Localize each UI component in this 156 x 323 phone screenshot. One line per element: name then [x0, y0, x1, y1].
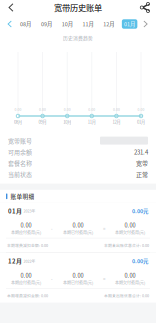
staticText: 12月 [103, 20, 114, 28]
staticText: 本期欠付费用(元) [115, 230, 145, 235]
staticText: 11月 [82, 20, 93, 28]
button[interactable]: 分享 [134, 0, 156, 15]
button[interactable]: 09月 [39, 19, 54, 29]
staticText: 本期欠付费用(元) [115, 280, 145, 286]
staticText: 套餐名称 [8, 159, 32, 167]
staticText: 01月 [124, 20, 135, 28]
staticText: 本期增费减扣金额: 0.00 [7, 243, 48, 248]
staticText: 2022年 [23, 258, 35, 264]
button[interactable]: 12月 [101, 19, 117, 29]
staticText: 0.00 [72, 221, 83, 229]
staticText: 0.00 [88, 107, 95, 112]
staticText: 0.00元 [132, 207, 148, 215]
staticText: 2023年 [23, 208, 35, 213]
staticText: = [103, 275, 105, 282]
staticText: 正常 [136, 170, 148, 179]
staticText: 01月 [137, 119, 145, 125]
staticText: 0.00 [20, 271, 31, 279]
staticText: 宽带历史账单 [54, 2, 102, 13]
staticText: 0.00 [124, 221, 135, 229]
button[interactable]: 11月 [80, 19, 96, 29]
staticText: 0.00 [14, 107, 21, 112]
staticText: 0.00元 [132, 257, 148, 265]
button[interactable]: 01月 [122, 19, 137, 29]
staticText: 0.00 [137, 107, 144, 112]
staticText: 231.4 [134, 147, 148, 156]
staticText: - [51, 275, 53, 282]
staticText: - [51, 225, 53, 231]
staticText: 本期未出账优惠合计: 0.00 [104, 293, 149, 298]
staticText: 0.00 [124, 271, 135, 279]
staticText: 08月 [20, 20, 31, 28]
button[interactable]: 下一页 [140, 15, 151, 33]
staticText: 12月 [8, 257, 22, 265]
staticText: 本期增费减扣金额: 0.00 [7, 293, 48, 298]
staticText: 宽带 [136, 159, 148, 167]
staticText: 09月 [39, 119, 47, 125]
staticText: 0.00 [113, 107, 120, 112]
staticText: 08月 [14, 119, 22, 125]
button[interactable]: 返回 [0, 0, 22, 15]
staticText: 0.00 [39, 107, 46, 112]
staticText: 0.00 [72, 271, 83, 279]
staticText: 当前状态 [8, 170, 32, 179]
button[interactable]: 上一页 [4, 15, 15, 33]
staticText: 本期应付费用(元) [11, 230, 41, 235]
staticText: 11月 [88, 119, 96, 125]
staticText: 01月 [8, 206, 22, 215]
staticText: 09月 [41, 20, 52, 28]
staticText: 宽带账号 [8, 136, 32, 145]
staticText: 10月 [63, 119, 71, 125]
button[interactable]: 08月 [18, 19, 33, 29]
button[interactable]: 10月 [59, 19, 75, 29]
staticText: 12月 [112, 119, 120, 125]
staticText: 历史消费趋势 [63, 34, 93, 41]
staticText: 账单明细 [10, 192, 34, 200]
staticText: 本期未出账优惠合计: 0.00 [104, 243, 149, 248]
staticText: 本期已付费用(元) [63, 280, 93, 286]
staticText: = [103, 225, 105, 231]
staticText: 0.00 [64, 107, 71, 112]
staticText: 可用余额 [8, 147, 32, 156]
staticText: 0.00 [20, 221, 31, 229]
staticText: 本期应付费用(元) [11, 280, 41, 286]
staticText: 10月 [62, 20, 73, 28]
staticText: 本期已付费用(元) [63, 230, 93, 235]
